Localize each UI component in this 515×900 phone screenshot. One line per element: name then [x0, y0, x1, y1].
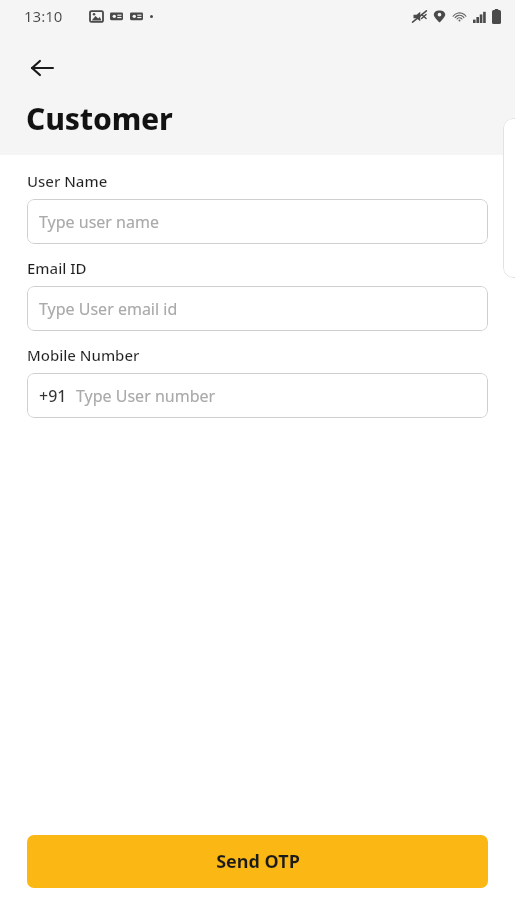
staticText: +91	[39, 385, 67, 407]
staticText: Email ID	[27, 258, 87, 278]
button[interactable]: +91	[27, 373, 488, 418]
button[interactable]: Send OTP	[27, 835, 488, 888]
staticText: User Name	[27, 171, 108, 191]
staticText: Send OTP	[216, 849, 300, 874]
staticText: Type User email id	[39, 298, 178, 320]
staticText: Mobile Number	[27, 345, 140, 365]
staticText: Type user name	[39, 211, 159, 233]
button[interactable]: Back	[18, 44, 66, 92]
button[interactable]: Type user name	[27, 199, 488, 244]
staticText: Type User number	[76, 385, 216, 407]
staticText: Customer	[26, 98, 173, 139]
button[interactable]: Type User email id	[27, 286, 488, 331]
staticText: 13:10	[24, 6, 63, 26]
